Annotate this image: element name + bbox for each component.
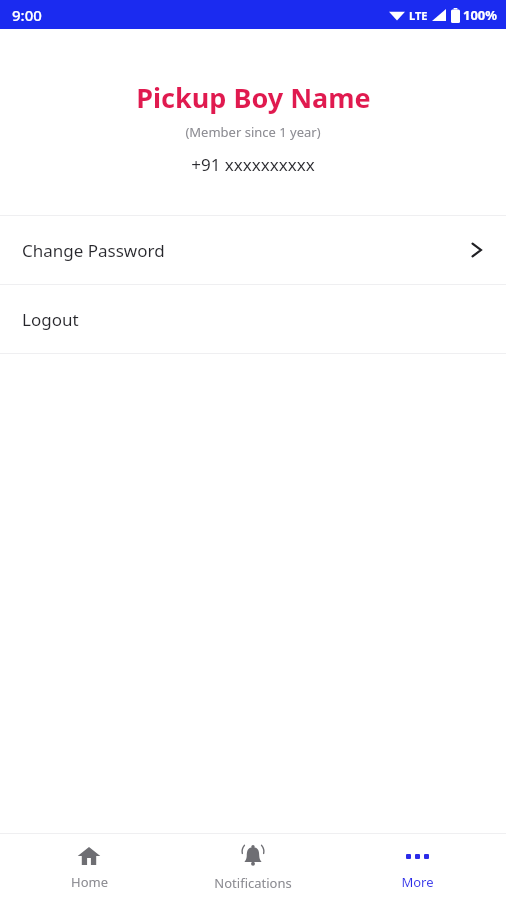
button[interactable]: Logout (0, 285, 506, 353)
staticText: (Member since 1 year) (185, 123, 321, 141)
other: Home (77, 844, 101, 868)
button[interactable]: Notifications (178, 837, 328, 898)
staticText: More (401, 873, 434, 891)
staticText: +91 xxxxxxxxxx (191, 153, 315, 176)
staticText: 9:00 (12, 5, 42, 25)
button[interactable]: Change Password (0, 216, 506, 284)
staticText: Logout (22, 308, 484, 331)
button[interactable]: More (342, 838, 492, 897)
staticText: LTE (409, 8, 428, 23)
other: More (403, 844, 431, 868)
staticText: Home (71, 873, 108, 891)
other: Notifications (240, 843, 266, 869)
staticText: 100% (463, 6, 498, 24)
button[interactable]: Home (14, 838, 164, 897)
staticText: Notifications (214, 874, 292, 892)
staticText: Pickup Boy Name (136, 79, 371, 116)
staticText: Change Password (22, 239, 470, 262)
